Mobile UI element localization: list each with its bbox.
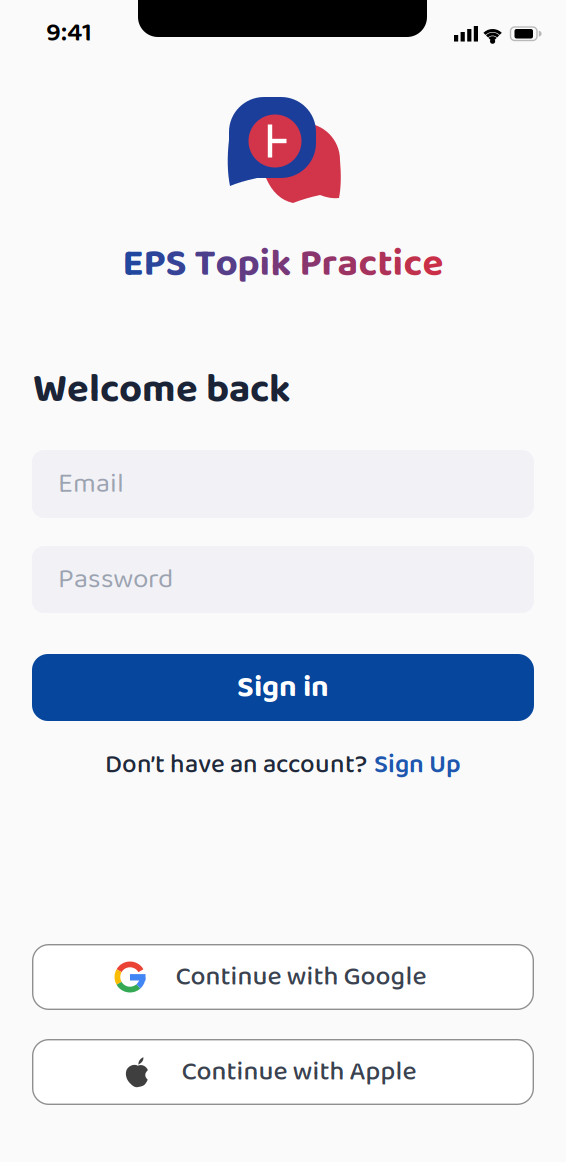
button[interactable]: Password (32, 546, 534, 613)
staticText: Email (58, 462, 124, 506)
staticText: o (215, 233, 237, 295)
staticText: k (270, 233, 291, 295)
staticText: T (194, 233, 215, 295)
staticText: P (299, 233, 321, 295)
staticText: Continue with Apple (181, 1051, 416, 1093)
button[interactable]: Continue with Apple (32, 1039, 534, 1105)
staticText: Welcome back (33, 358, 291, 422)
staticText: c (358, 233, 377, 295)
staticText: P (143, 233, 165, 295)
staticText: E (122, 233, 143, 295)
button[interactable]: Sign Up (374, 744, 461, 786)
staticText: i (392, 233, 403, 295)
button[interactable]: Continue with Google (32, 944, 534, 1010)
staticText: r (321, 233, 337, 295)
staticText: Don’t have an account? (105, 744, 367, 786)
staticText: e (422, 233, 443, 295)
staticText: p (237, 233, 259, 295)
staticText: Continue with Google (175, 956, 426, 998)
staticText: a (337, 233, 358, 295)
staticText: Sign Up (374, 744, 461, 786)
staticText: 9:41 (46, 12, 92, 54)
staticText: i (259, 233, 270, 295)
button[interactable]: Email (32, 450, 534, 518)
staticText: c (403, 233, 422, 295)
button[interactable]: Sign in (32, 654, 534, 721)
staticText: Sign in (237, 663, 329, 712)
staticText: Password (58, 557, 173, 602)
staticText: t (377, 233, 392, 295)
staticText: S (165, 233, 186, 295)
